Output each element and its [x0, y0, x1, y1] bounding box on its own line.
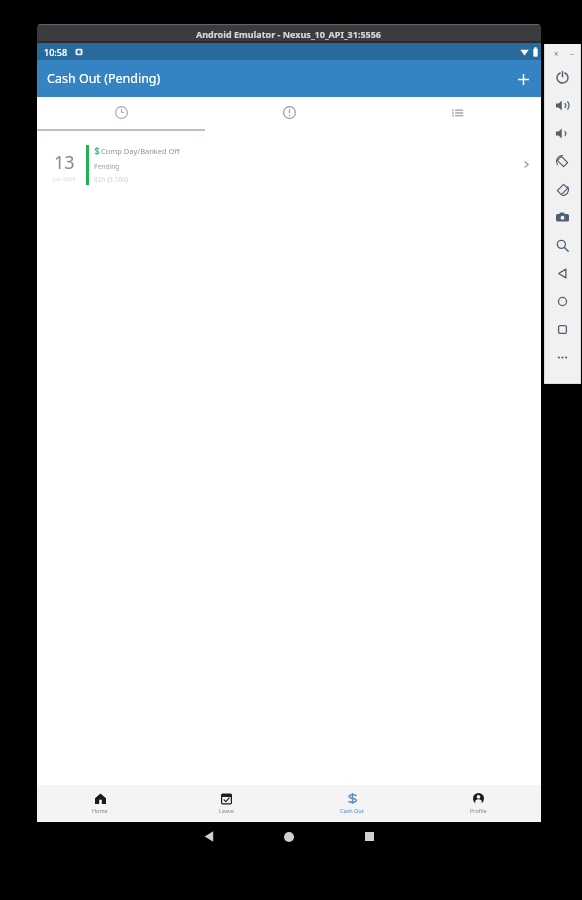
button[interactable]: Cash Out [289, 785, 415, 822]
button[interactable]: Approved [205, 97, 373, 131]
staticText: Comp Day/Banked Off [101, 146, 180, 156]
staticText: 13 [54, 150, 75, 175]
staticText: Cash Out (Pending) [47, 70, 161, 87]
button[interactable]: Back [544, 259, 581, 287]
staticText: – [570, 49, 574, 59]
button[interactable]: Home [269, 822, 309, 851]
button[interactable]: Minimize [565, 47, 578, 60]
staticText: Profile [470, 807, 487, 814]
staticText: Pending [94, 162, 120, 171]
button[interactable]: Recent apps [349, 822, 389, 851]
button[interactable]: Volume down [544, 119, 581, 147]
button[interactable]: Profile [415, 785, 541, 822]
staticText: 10:58 [44, 46, 68, 58]
button[interactable]: Zoom [544, 231, 581, 259]
button[interactable]: Home [544, 287, 581, 315]
staticText: Android Emulator - Nexus_10_API_31:5556 [196, 28, 382, 40]
staticText: Jun 2024 [53, 175, 76, 182]
staticText: × [554, 48, 559, 59]
button[interactable]: Overview [544, 315, 581, 343]
button[interactable]: 13 [37, 131, 541, 197]
button[interactable]: Open details [511, 131, 541, 197]
button[interactable]: Pending [37, 97, 205, 131]
button[interactable]: All [373, 97, 541, 131]
button[interactable]: Rotate left [544, 147, 581, 175]
button[interactable]: Rotate right [544, 175, 581, 203]
button[interactable]: Leave [163, 785, 289, 822]
button[interactable]: Add [511, 67, 535, 91]
button[interactable]: Power [544, 63, 581, 91]
staticText: 82h (9.10d) [94, 175, 128, 184]
staticText: Cash Out [340, 807, 364, 814]
button[interactable]: Home [37, 785, 163, 822]
button[interactable]: Back [189, 822, 229, 851]
staticText: Home [92, 807, 108, 814]
button[interactable]: More [544, 343, 581, 371]
button[interactable]: Volume up [544, 91, 581, 119]
button[interactable]: Close [550, 47, 563, 60]
button[interactable]: Take screenshot [544, 203, 581, 231]
staticText: Leave [219, 807, 234, 814]
